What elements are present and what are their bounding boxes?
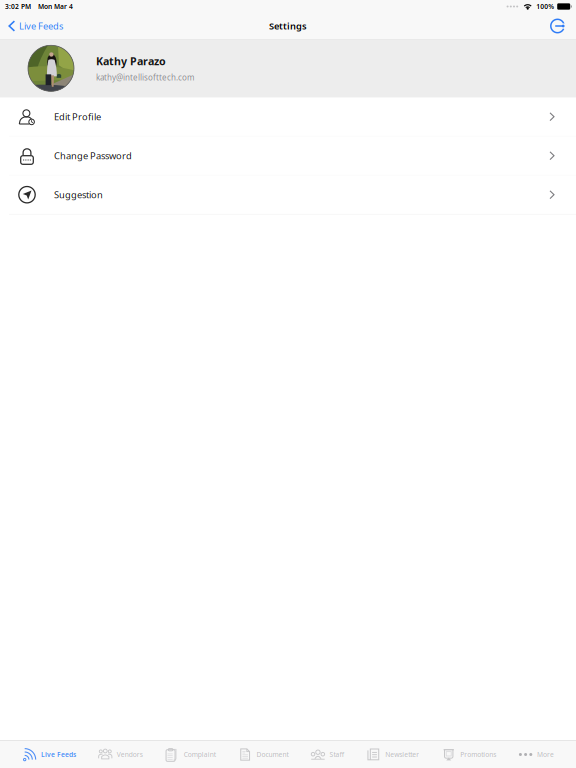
staticText: Newsletter [385,750,419,759]
button[interactable]: Staff [310,741,344,767]
staticText: Vendors [117,750,143,759]
button[interactable]: Change Password [0,136,576,175]
button[interactable]: Document [238,741,289,767]
staticText: Staff [329,750,344,759]
button[interactable]: Complaint [165,741,216,767]
staticText: Change Password [54,149,132,162]
staticText: Mon Mar 4 [38,2,73,11]
staticText: More [537,750,554,759]
staticText: Promotions [460,750,496,759]
staticText: Settings [269,20,307,32]
staticText: 100% [536,2,554,11]
staticText: Document [257,750,289,759]
staticText: Suggestion [54,188,103,201]
staticText: Kathy Parazo [96,54,166,68]
staticText: 3:02 PM [5,2,31,11]
staticText: kathy@intellisofttech.com [96,72,194,83]
staticText: Complaint [184,750,216,759]
button[interactable]: Vendors [98,741,143,767]
staticText: Live Feeds [19,20,63,32]
button[interactable]: Newsletter [366,741,419,767]
button[interactable]: Live Feeds [2,13,69,39]
button[interactable]: Promotions [441,741,496,767]
button[interactable]: Live Feeds [22,741,76,767]
button[interactable]: Suggestion [0,175,576,214]
staticText: Live Feeds [41,750,76,759]
button[interactable]: Log out [541,13,574,39]
button[interactable]: Edit Profile [0,97,576,136]
button[interactable]: More [518,741,554,767]
staticText: Edit Profile [54,110,101,123]
